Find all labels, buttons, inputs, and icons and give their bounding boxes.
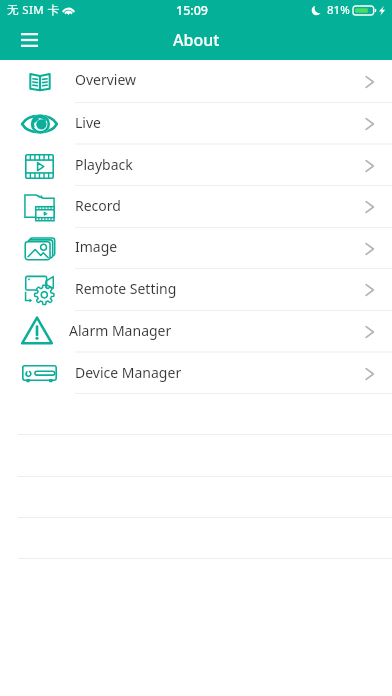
- staticText: 81%: [327, 2, 350, 18]
- staticText: 15:09: [176, 2, 209, 19]
- button[interactable]: Image: [0, 228, 392, 269]
- button[interactable]: Playback: [0, 145, 392, 187]
- button[interactable]: Menu: [11, 22, 47, 58]
- button[interactable]: Device Manager: [0, 353, 392, 395]
- button[interactable]: Alarm Manager: [0, 311, 392, 353]
- staticText: 无 SIM 卡: [7, 2, 60, 18]
- button[interactable]: Record: [0, 186, 392, 228]
- staticText: Remote Setting: [75, 279, 177, 298]
- staticText: Overview: [75, 70, 137, 89]
- staticText: Record: [75, 196, 121, 215]
- button[interactable]: Remote Setting: [0, 269, 392, 311]
- button[interactable]: Overview: [0, 60, 392, 103]
- button[interactable]: Live: [0, 103, 392, 145]
- staticText: Image: [75, 237, 118, 256]
- staticText: Alarm Manager: [69, 321, 172, 340]
- staticText: Live: [75, 113, 101, 132]
- staticText: Playback: [75, 155, 133, 174]
- staticText: Device Manager: [75, 363, 182, 382]
- staticText: About: [173, 29, 220, 51]
